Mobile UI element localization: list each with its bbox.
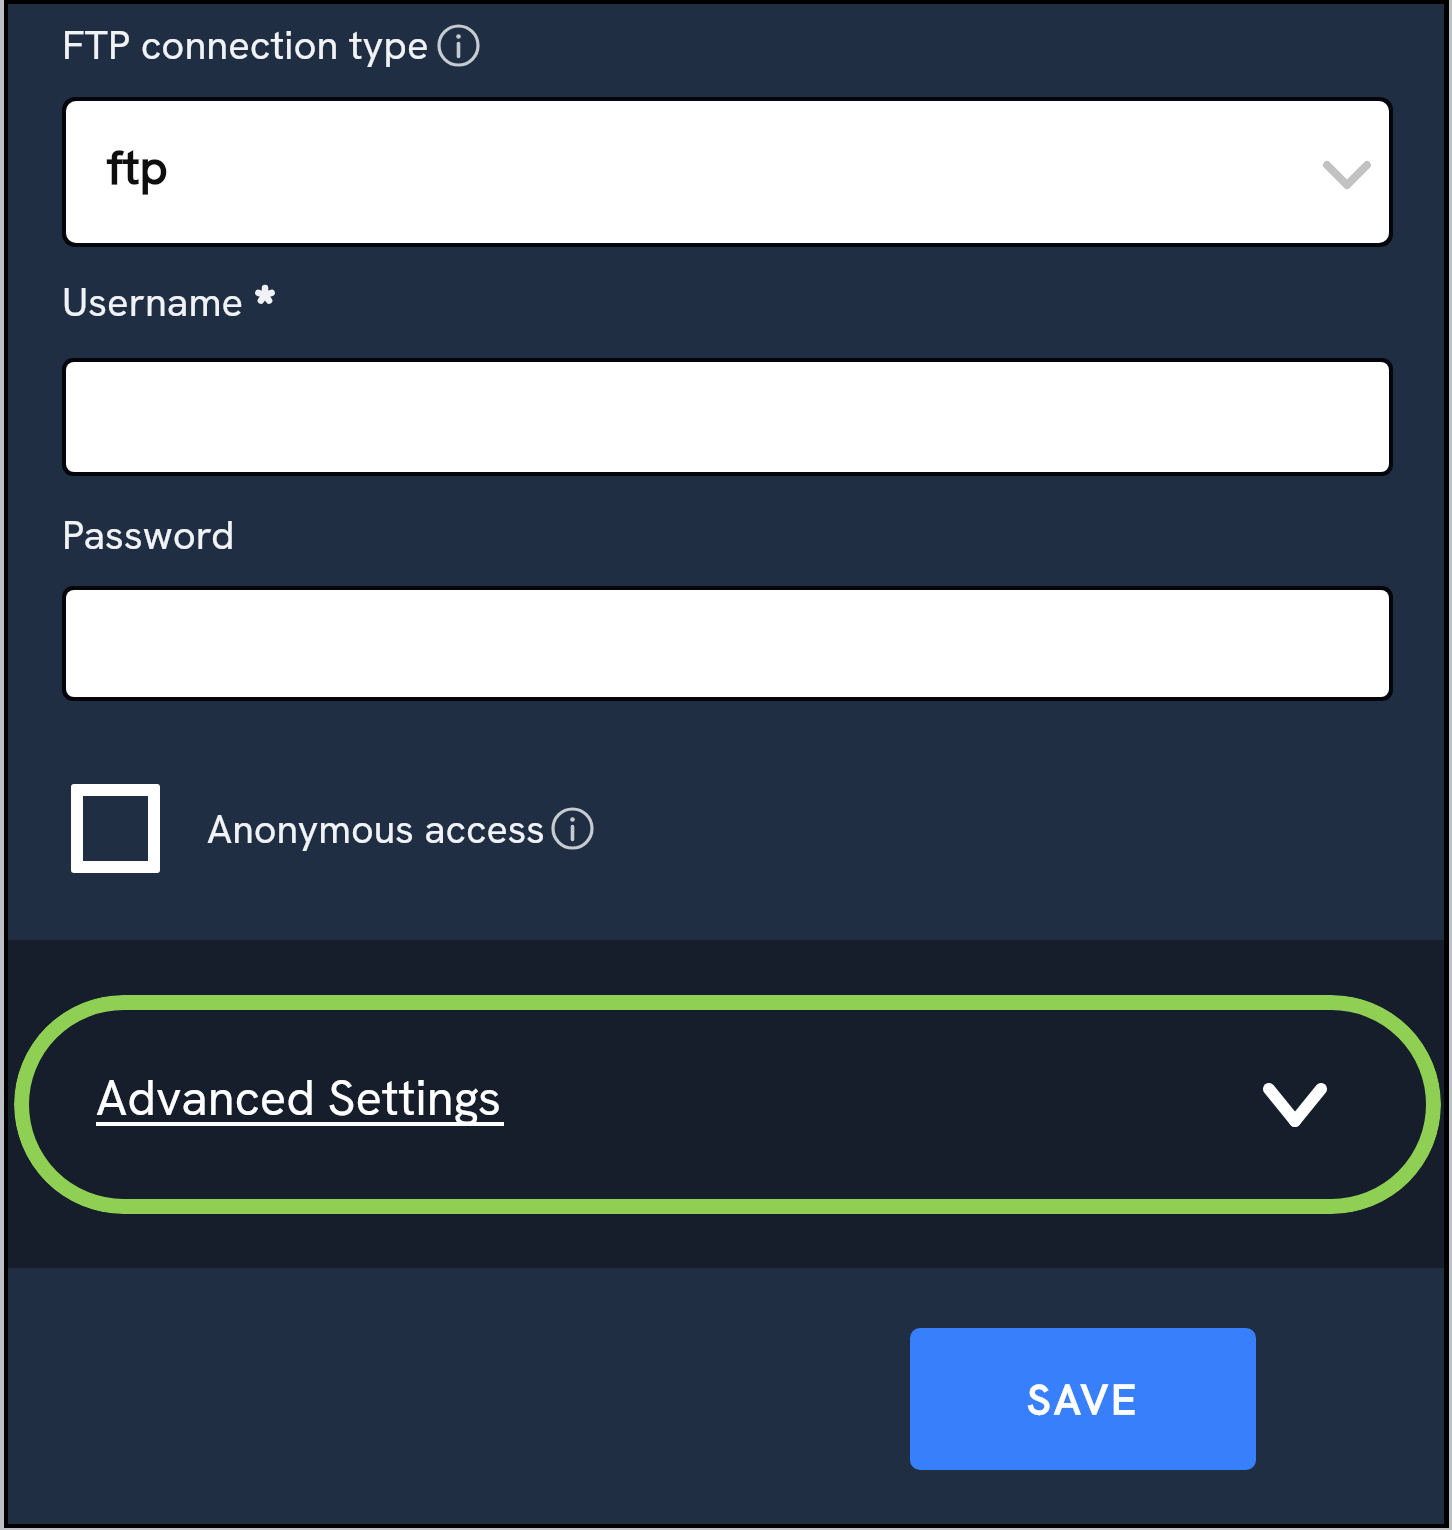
button[interactable] [66, 590, 1389, 697]
staticText: ftp [107, 136, 168, 199]
staticText: SAVE [1027, 1372, 1139, 1427]
button[interactable] [66, 362, 1389, 472]
button[interactable]: Anonymous access [71, 783, 593, 874]
other: Expand connection type [1322, 150, 1372, 200]
staticText: Password [62, 509, 235, 561]
staticText: FTP connection type [62, 19, 429, 71]
staticText: Advanced Settings [96, 1066, 502, 1130]
staticText: Username [62, 276, 244, 328]
button[interactable]: Advanced Settings [14, 995, 1441, 1214]
staticText: Anonymous access [207, 803, 545, 854]
button[interactable]: ftp [66, 101, 1389, 243]
other: Expand advanced settings [1255, 1065, 1335, 1145]
button[interactable]: SAVE [910, 1328, 1256, 1470]
